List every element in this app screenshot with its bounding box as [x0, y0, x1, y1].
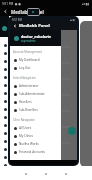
button[interactable]: Add: [68, 127, 76, 135]
button[interactable]: Resellers: [10, 98, 61, 106]
staticText: All Users: [19, 126, 32, 130]
staticText: Log Out: [19, 66, 31, 70]
staticText: ▴▾ ▮: [70, 18, 75, 22]
button[interactable]: Log Out: [10, 64, 61, 72]
staticText: Lorem i: [62, 125, 72, 129]
button[interactable]: Sub-Administrator: [10, 90, 61, 98]
button[interactable]: Administrator: [10, 82, 61, 90]
staticText: doctor_eskolarte: [21, 34, 52, 39]
staticText: Clinic Navigation: [13, 118, 36, 122]
button[interactable]: Sub-Resellers: [10, 106, 61, 114]
staticText: Select Navigation: [13, 76, 36, 80]
staticText: Account Management: [13, 50, 42, 54]
staticText: My Dashboard: [19, 58, 40, 62]
staticText: Financial Accounts: [19, 150, 46, 154]
button[interactable]: Back: [0, 7, 92, 16]
staticText: ▴▾ ▮▮: [82, 2, 90, 6]
staticText: Administrator: [19, 84, 39, 88]
staticText: Nuelha Works: [19, 142, 39, 146]
staticText: 9:51 PM ● ●: [2, 2, 21, 6]
staticText: superadmin: [21, 39, 36, 43]
button[interactable]: Open navigation drawer: [10, 22, 77, 30]
button[interactable]: All Users: [10, 124, 61, 132]
staticText: My Clinics: [19, 134, 33, 138]
staticText: Medlabb Panel: [19, 23, 50, 29]
button[interactable]: Financial Accounts: [10, 148, 61, 156]
other: Back: [3, 9, 8, 14]
button[interactable]: My Dashboard: [10, 56, 61, 64]
staticText: 9:51 PM: [12, 18, 22, 22]
staticText: Sub-Administrator: [19, 92, 45, 96]
staticText: Medlabb Panel: [11, 9, 44, 15]
button[interactable]: Nuelha Works: [10, 140, 61, 148]
button[interactable]: My Clinics: [10, 132, 61, 140]
other: Open navigation drawer: [13, 24, 17, 28]
button[interactable]: doctor_eskolarte: [10, 30, 61, 46]
staticText: Resellers: [19, 100, 32, 104]
staticText: Sub-Resellers: [19, 108, 38, 112]
